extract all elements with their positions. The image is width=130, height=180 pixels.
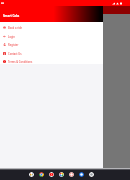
button[interactable]: Chrome — [39, 172, 44, 177]
button[interactable]: Contact Us — [0, 49, 103, 58]
button[interactable]: Book a ride — [0, 23, 103, 32]
staticText: Terms & Conditions — [8, 60, 33, 64]
button[interactable]: App — [79, 172, 84, 177]
button[interactable]: Photos — [59, 172, 64, 177]
button[interactable]: Register — [0, 40, 103, 49]
button[interactable]: App — [89, 172, 94, 177]
staticText: Register — [8, 43, 19, 47]
button[interactable]: Terms & Conditions — [0, 57, 103, 66]
button[interactable]: YouTube — [49, 172, 54, 177]
button[interactable]: Gmail — [29, 172, 34, 177]
staticText: Contact Us — [8, 52, 22, 56]
button[interactable]: App — [69, 172, 74, 177]
staticText: Smart Cabs — [3, 14, 20, 18]
staticText: Book a ride — [8, 26, 23, 30]
staticText: Login — [8, 35, 15, 39]
button[interactable]: Login — [0, 32, 103, 41]
